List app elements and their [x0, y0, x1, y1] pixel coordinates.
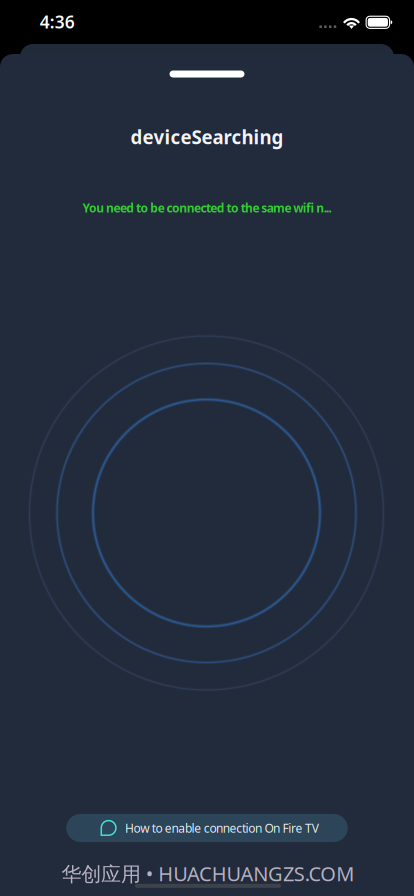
- button[interactable]: How to enable connection On Fire TV: [66, 814, 348, 842]
- staticText: 华创应用 • HUACHUANGZS.COM: [61, 860, 354, 887]
- staticText: deviceSearching: [130, 124, 283, 149]
- staticText: How to enable connection On Fire TV: [125, 820, 319, 836]
- staticText: You need to be connected to the same wif…: [82, 200, 331, 216]
- staticText: 4:36: [40, 10, 75, 33]
